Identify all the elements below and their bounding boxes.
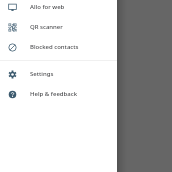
staticText: Settings xyxy=(30,70,54,78)
button[interactable]: Close navigation drawer xyxy=(117,0,172,172)
staticText: QR scanner xyxy=(30,23,63,31)
staticText: Blocked contacts xyxy=(30,43,79,51)
staticText: Help & feedback xyxy=(30,90,78,98)
button[interactable]: Allo for web xyxy=(0,0,117,17)
staticText: Allo for web xyxy=(30,3,65,11)
button[interactable]: QR scanner xyxy=(0,17,117,37)
button[interactable]: Help & feedback xyxy=(0,84,117,104)
button[interactable]: Blocked contacts xyxy=(0,37,117,57)
button[interactable]: Settings xyxy=(0,64,117,84)
